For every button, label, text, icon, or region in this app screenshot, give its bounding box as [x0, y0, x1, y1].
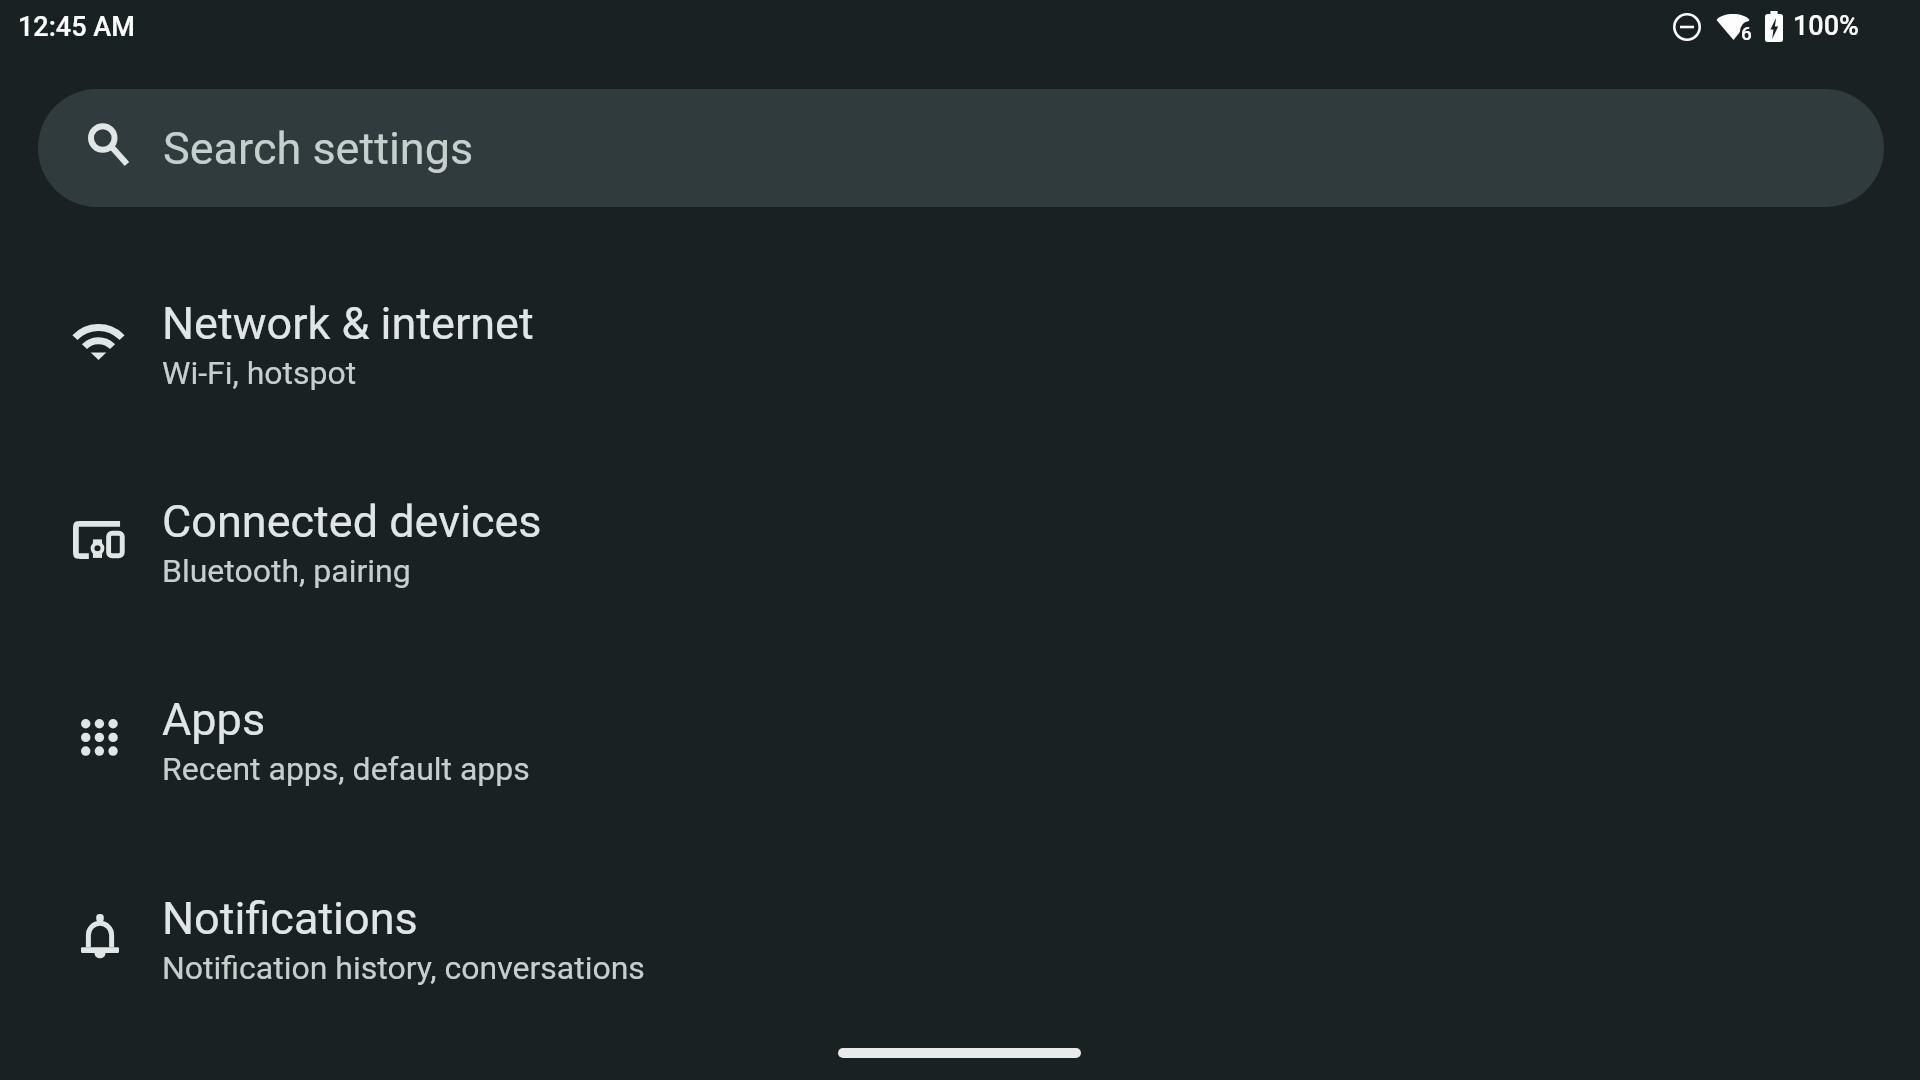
staticText: Notifications [162, 892, 418, 945]
button[interactable]: Apps [0, 683, 1920, 881]
button[interactable]: Connected devices [0, 485, 1920, 683]
button[interactable]: Network & internet [0, 287, 1920, 485]
button[interactable]: Search settings [38, 89, 1884, 207]
staticText: Notification history, conversations [162, 949, 645, 987]
staticText: Search settings [163, 122, 474, 175]
staticText: 6 [1741, 22, 1752, 44]
staticText: Apps [162, 693, 266, 746]
staticText: Connected devices [162, 495, 542, 548]
button[interactable]: Notifications [0, 882, 1920, 1080]
staticText: Bluetooth, pairing [162, 552, 411, 590]
staticText: Network & internet [162, 297, 534, 350]
staticText: Wi-Fi, hotspot [162, 354, 357, 392]
staticText: 12:45 AM [18, 11, 135, 43]
staticText: 100% [1793, 10, 1859, 42]
staticText: Recent apps, default apps [162, 750, 530, 788]
